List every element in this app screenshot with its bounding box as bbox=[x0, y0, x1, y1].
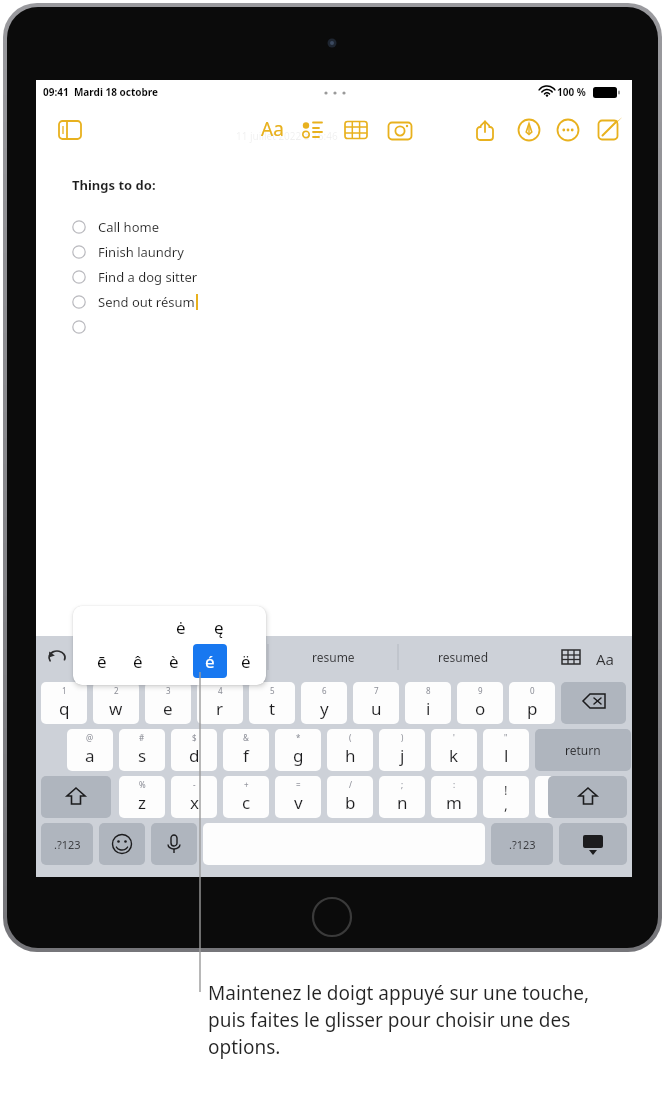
staticText: ' bbox=[453, 732, 455, 743]
staticText: 2 bbox=[114, 685, 119, 696]
button[interactable]: Emoji bbox=[99, 823, 145, 865]
staticText: * bbox=[296, 732, 301, 743]
button[interactable]: Delete bbox=[561, 682, 626, 724]
button[interactable]: ė bbox=[163, 610, 199, 644]
button[interactable]: è bbox=[157, 644, 191, 678]
button[interactable]: 5 bbox=[249, 682, 295, 724]
button[interactable]: 9 bbox=[457, 682, 503, 724]
button[interactable]: = bbox=[275, 776, 321, 818]
staticText: z bbox=[138, 791, 146, 814]
button[interactable] bbox=[72, 314, 430, 339]
staticText: 7 bbox=[374, 685, 379, 696]
button[interactable]: Hide keyboard bbox=[559, 823, 627, 865]
staticText: o bbox=[475, 697, 486, 720]
staticText: / bbox=[349, 779, 352, 790]
button[interactable]: ? bbox=[535, 776, 581, 818]
button[interactable]: 4 bbox=[197, 682, 243, 724]
button[interactable]: ' bbox=[431, 729, 477, 771]
button[interactable]: ę bbox=[201, 610, 237, 644]
button[interactable]: é bbox=[193, 644, 227, 678]
button[interactable]: resume bbox=[268, 636, 398, 678]
button[interactable]: / bbox=[327, 776, 373, 818]
staticText: t bbox=[269, 697, 276, 720]
staticText: x bbox=[190, 791, 199, 814]
staticText: ė bbox=[176, 616, 186, 639]
button[interactable]: 7 bbox=[353, 682, 399, 724]
button[interactable]: Shift right bbox=[548, 776, 627, 818]
button[interactable]: Dictation bbox=[151, 823, 197, 865]
button[interactable]: 3 bbox=[145, 682, 191, 724]
button[interactable]: ( bbox=[327, 729, 373, 771]
button[interactable]: Send out résum bbox=[72, 289, 430, 314]
button[interactable]: Things to do: bbox=[72, 176, 156, 194]
staticText: 11 juillet 2022 à 16:46 bbox=[236, 129, 338, 143]
staticText: % bbox=[139, 779, 146, 790]
button[interactable]: ē bbox=[85, 644, 119, 678]
staticText: g bbox=[293, 744, 304, 767]
staticText: Find a dog sitter bbox=[98, 268, 198, 286]
staticText: 8 bbox=[426, 685, 431, 696]
button[interactable]: - bbox=[171, 776, 217, 818]
button[interactable]: 8 bbox=[405, 682, 451, 724]
button[interactable]: Find a dog sitter bbox=[72, 264, 430, 289]
button[interactable]: : bbox=[431, 776, 477, 818]
button[interactable]: Aa bbox=[254, 111, 290, 147]
button[interactable]: Share bbox=[467, 112, 503, 148]
staticText: 1 bbox=[62, 685, 67, 696]
staticText: a bbox=[85, 744, 95, 767]
button[interactable]: 1 bbox=[41, 682, 87, 724]
button[interactable]: $ bbox=[171, 729, 217, 771]
button[interactable]: % bbox=[119, 776, 165, 818]
button[interactable]: & bbox=[223, 729, 269, 771]
button[interactable]: resumed bbox=[398, 636, 528, 678]
staticText: s bbox=[138, 744, 147, 767]
staticText: return bbox=[565, 742, 601, 758]
staticText: ) bbox=[401, 732, 404, 743]
staticText: d bbox=[189, 744, 200, 767]
button[interactable]: .?123 bbox=[41, 823, 93, 865]
button[interactable]: Table bbox=[338, 112, 374, 148]
button[interactable]: * bbox=[275, 729, 321, 771]
staticText: 5 bbox=[270, 685, 275, 696]
staticText: .?123 bbox=[54, 837, 81, 852]
staticText: 3 bbox=[166, 685, 171, 696]
button[interactable]: 6 bbox=[301, 682, 347, 724]
button[interactable]: ê bbox=[121, 644, 155, 678]
button[interactable]: Markup bbox=[511, 112, 547, 148]
button[interactable]: ë bbox=[229, 644, 263, 678]
button[interactable]: 0 bbox=[509, 682, 555, 724]
button[interactable]: ) bbox=[379, 729, 425, 771]
staticText: v bbox=[294, 791, 303, 814]
button[interactable]: @ bbox=[67, 729, 113, 771]
button[interactable]: " bbox=[483, 729, 529, 771]
button[interactable]: Camera bbox=[382, 112, 418, 148]
button[interactable]: .?123 bbox=[491, 823, 553, 865]
button[interactable]: ! bbox=[483, 776, 529, 818]
button[interactable]: return bbox=[535, 729, 631, 771]
staticText: $ bbox=[192, 732, 197, 743]
button[interactable]: Undo bbox=[42, 642, 72, 672]
staticText: - bbox=[193, 779, 196, 790]
staticText: ! bbox=[504, 781, 508, 799]
button[interactable]: Shift bbox=[41, 776, 111, 818]
button[interactable]: Call home bbox=[72, 214, 430, 239]
staticText: é bbox=[205, 650, 215, 673]
button[interactable]: Checklist bbox=[294, 112, 330, 148]
staticText: ë bbox=[241, 650, 251, 673]
button[interactable]: Aa bbox=[588, 642, 622, 676]
button[interactable]: More bbox=[550, 112, 586, 148]
staticText: r bbox=[216, 697, 224, 720]
button[interactable]: Sidebar bbox=[52, 112, 88, 148]
staticText: resumed bbox=[438, 649, 489, 665]
button[interactable]: Finish laundry bbox=[72, 239, 430, 264]
button[interactable]: ; bbox=[379, 776, 425, 818]
button[interactable]: + bbox=[223, 776, 269, 818]
button[interactable]: 2 bbox=[93, 682, 139, 724]
button[interactable]: Compose bbox=[590, 112, 626, 148]
button[interactable]: # bbox=[119, 729, 165, 771]
staticText: Aa bbox=[261, 116, 284, 142]
button[interactable]: Insert table bbox=[556, 642, 586, 672]
